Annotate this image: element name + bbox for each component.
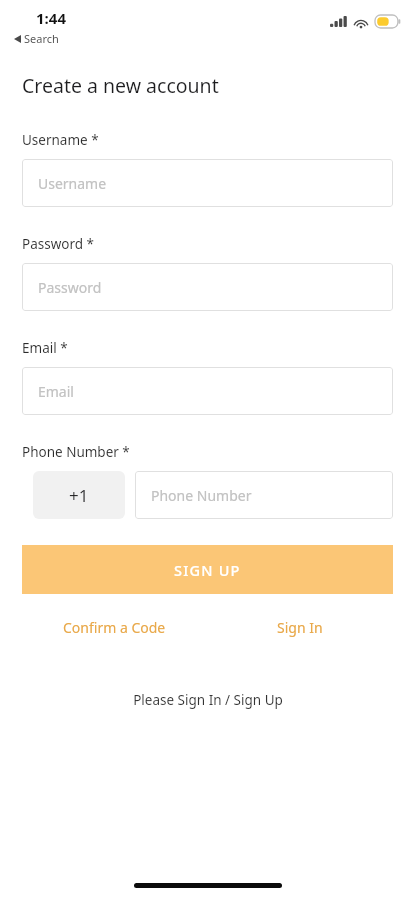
staticText: Password <box>38 278 102 297</box>
other: Home indicator <box>134 883 282 888</box>
staticText: Password * <box>22 235 95 253</box>
button[interactable]: +1 <box>33 471 125 519</box>
staticText: Phone Number * <box>22 443 130 461</box>
button[interactable]: Confirm a Code <box>22 612 207 643</box>
staticText: Sign In <box>277 618 323 637</box>
button[interactable]: Phone Number <box>135 471 393 519</box>
staticText: Create a new account <box>22 72 219 99</box>
button[interactable]: Username <box>22 159 393 207</box>
staticText: Confirm a Code <box>63 618 166 637</box>
button[interactable]: Sign In <box>207 612 393 643</box>
staticText: Username * <box>22 131 99 149</box>
staticText: +1 <box>69 484 89 507</box>
staticText: Email <box>38 382 74 401</box>
staticText: Username <box>38 174 107 193</box>
staticText: Please Sign In / Sign Up <box>133 691 283 709</box>
staticText: SIGN UP <box>174 560 241 580</box>
staticText: 1:44 <box>36 8 66 28</box>
staticText: Search <box>24 31 59 46</box>
staticText: Phone Number <box>151 486 252 505</box>
button[interactable]: SIGN UP <box>22 545 393 594</box>
staticText: Email * <box>22 339 68 357</box>
button[interactable]: Password <box>22 263 393 311</box>
button[interactable]: Search <box>13 30 60 47</box>
button[interactable]: Email <box>22 367 393 415</box>
